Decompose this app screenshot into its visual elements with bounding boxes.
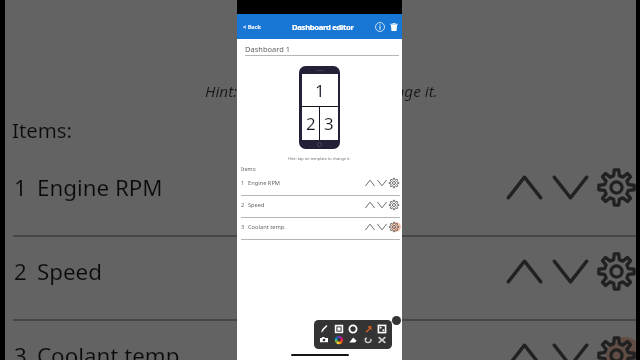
button[interactable]: Move up [506, 337, 543, 360]
staticText: Coolant temp. [248, 223, 286, 231]
button[interactable]: Item settings [598, 169, 635, 206]
button[interactable]: Tool [319, 324, 329, 334]
staticText: 3 [241, 223, 245, 231]
button[interactable]: Move up [506, 253, 543, 290]
staticText: Hint: tap on template to change it. [205, 81, 438, 102]
button[interactable]: 2 [237, 196, 402, 218]
button[interactable]: 1 [237, 174, 402, 196]
button[interactable]: Item settings [389, 222, 399, 232]
button[interactable]: < Back [241, 21, 264, 33]
staticText: 1 [315, 79, 325, 102]
button[interactable]: Tool [334, 324, 344, 334]
button[interactable]: 3 [237, 218, 402, 240]
staticText: 2 [306, 112, 316, 135]
button[interactable]: Move down [552, 169, 589, 206]
staticText: Speed [37, 256, 102, 286]
button[interactable]: Move up [365, 200, 375, 210]
button[interactable]: Tool [348, 324, 358, 334]
staticText: 3 [324, 112, 334, 135]
staticText: < Back [243, 23, 262, 31]
button[interactable]: Move down [552, 337, 589, 360]
staticText: Coolant temp. [37, 340, 186, 360]
button[interactable]: Item settings [598, 253, 635, 290]
button[interactable]: Move down [377, 222, 387, 232]
staticText: 2 [241, 201, 245, 209]
staticText: Speed [248, 201, 265, 209]
button[interactable]: Move up [365, 222, 375, 232]
button[interactable]: Tool [363, 324, 373, 334]
staticText: Engine RPM [248, 179, 280, 187]
button[interactable]: Item settings [598, 337, 635, 360]
button[interactable]: Move down [377, 200, 387, 210]
staticText: Engine RPM [37, 172, 163, 202]
staticText: 1 [14, 172, 27, 202]
staticText: 3 [14, 340, 27, 360]
button[interactable]: Tool [363, 335, 373, 345]
staticText: Items: [12, 116, 73, 144]
staticText: 2 [14, 256, 27, 286]
button[interactable]: Move up [506, 169, 543, 206]
button[interactable]: 1 [299, 66, 340, 149]
button[interactable]: 3 [0, 321, 640, 360]
staticText: 1 [241, 179, 245, 187]
button[interactable]: Tool [334, 335, 344, 345]
staticText: Dashboard editor [292, 22, 354, 32]
staticText: Dashboard 1 [245, 44, 291, 54]
button[interactable]: Move down [377, 178, 387, 188]
button[interactable]: Info [375, 22, 385, 32]
button[interactable]: 2 [0, 237, 640, 321]
button[interactable]: Tool [319, 335, 329, 345]
button[interactable]: Move up [365, 178, 375, 188]
button[interactable]: Move down [552, 253, 589, 290]
button[interactable]: Tool [377, 324, 387, 334]
button[interactable]: Tool [377, 335, 387, 345]
staticText: Hint: tap on template to change it. [288, 156, 351, 161]
button[interactable]: Move toolbar [392, 316, 401, 325]
button[interactable]: Item settings [389, 200, 399, 210]
button[interactable]: Delete dashboard [389, 22, 399, 32]
button[interactable]: Item settings [389, 178, 399, 188]
button[interactable]: 1 [0, 153, 640, 237]
button[interactable]: Tool [348, 335, 358, 345]
staticText: Items: [241, 165, 257, 172]
